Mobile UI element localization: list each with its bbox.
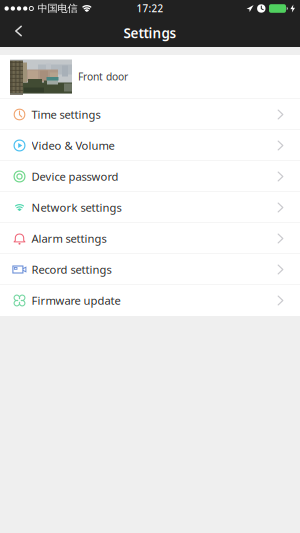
staticText: Network settings [31, 200, 121, 215]
button[interactable]: Device password [0, 161, 300, 192]
button[interactable]: Front door [0, 55, 300, 98]
staticText: Device password [31, 169, 118, 184]
staticText: Settings [123, 24, 176, 42]
staticText: 中国电信 [37, 2, 77, 15]
button[interactable]: Video & Volume [0, 130, 300, 161]
staticText: 17:22 [136, 2, 163, 15]
staticText: Record settings [31, 262, 111, 277]
staticText: Front door [78, 69, 128, 83]
button[interactable]: Alarm settings [0, 223, 300, 254]
staticText: Video & Volume [31, 138, 114, 153]
staticText: Firmware update [31, 293, 120, 308]
button[interactable]: Network settings [0, 192, 300, 223]
button[interactable]: Time settings [0, 99, 300, 130]
staticText: Time settings [31, 107, 100, 122]
staticText: Alarm settings [31, 231, 106, 246]
button[interactable]: Back [0, 19, 34, 47]
button[interactable]: Firmware update [0, 285, 300, 316]
button[interactable]: Record settings [0, 254, 300, 285]
